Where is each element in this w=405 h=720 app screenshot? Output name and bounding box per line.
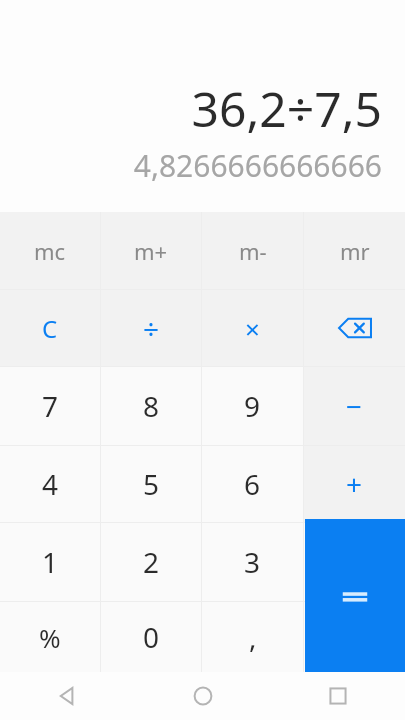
staticText: 5 — [143, 465, 160, 503]
button[interactable]: 0 — [101, 602, 201, 672]
button[interactable]: Home — [135, 672, 270, 720]
button[interactable]: mc — [0, 212, 100, 289]
staticText: 1 — [42, 543, 59, 581]
staticText: + — [346, 465, 363, 503]
button[interactable]: 7 — [0, 367, 100, 445]
staticText: 4 — [42, 465, 59, 503]
button[interactable]: Equals — [305, 519, 405, 672]
button[interactable]: Backspace — [304, 290, 405, 366]
staticText: % — [39, 620, 61, 655]
button[interactable]: 2 — [101, 523, 201, 601]
button[interactable]: 8 — [101, 367, 201, 445]
button[interactable]: % — [0, 602, 100, 672]
button[interactable]: Back — [0, 672, 135, 720]
button[interactable]: 1 — [0, 523, 100, 601]
staticText: 0 — [143, 618, 160, 656]
button[interactable]: + — [304, 446, 405, 522]
staticText: m+ — [134, 236, 168, 266]
button[interactable]: × — [202, 290, 303, 366]
button[interactable]: Recent apps — [270, 672, 405, 720]
staticText: × — [245, 311, 260, 346]
button[interactable]: 5 — [101, 446, 201, 522]
staticText: mr — [340, 236, 370, 266]
staticText: m- — [239, 236, 267, 266]
button[interactable]: C — [0, 290, 100, 366]
button[interactable]: 9 — [202, 367, 303, 445]
staticText: mc — [34, 236, 66, 266]
staticText: 8 — [143, 387, 160, 425]
button[interactable]: ÷ — [101, 290, 201, 366]
button[interactable]: , — [202, 602, 303, 672]
button[interactable]: m- — [202, 212, 303, 289]
staticText: ÷ — [143, 309, 160, 347]
staticText: 4,8266666666666 — [133, 145, 382, 186]
staticText: C — [42, 312, 58, 345]
staticText: , — [249, 618, 257, 656]
staticText: − — [346, 387, 363, 425]
staticText: 36,2÷7,5 — [191, 76, 382, 141]
button[interactable]: 6 — [202, 446, 303, 522]
button[interactable]: m+ — [101, 212, 201, 289]
button[interactable]: 4 — [0, 446, 100, 522]
staticText: 6 — [244, 465, 261, 503]
staticText: 2 — [143, 543, 160, 581]
staticText: 9 — [244, 387, 261, 425]
staticText: 7 — [42, 387, 59, 425]
staticText: 3 — [244, 543, 261, 581]
button[interactable]: mr — [304, 212, 405, 289]
button[interactable]: 3 — [202, 523, 303, 601]
button[interactable]: − — [304, 367, 405, 445]
